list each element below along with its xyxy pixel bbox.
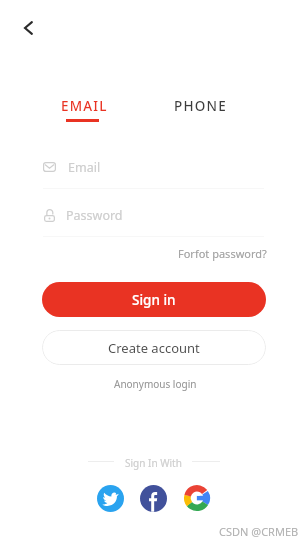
button[interactable]: Sign in with Google xyxy=(184,485,210,511)
button[interactable]: Sign in xyxy=(42,282,266,317)
staticText: EMAIL xyxy=(61,97,108,115)
staticText: Password xyxy=(66,207,123,224)
button[interactable]: Anonymous login xyxy=(109,375,201,393)
staticText: CSDN @CRMEB xyxy=(219,524,299,539)
button[interactable]: Create account xyxy=(42,330,266,365)
button[interactable]: Sign in with Facebook xyxy=(140,485,167,512)
button[interactable]: PHONE xyxy=(162,97,238,121)
staticText: Create account xyxy=(108,339,200,357)
staticText: Email xyxy=(68,159,101,176)
button[interactable]: Back xyxy=(12,11,46,45)
staticText: Anonymous login xyxy=(114,377,197,391)
button[interactable]: Sign in with Twitter xyxy=(97,485,124,512)
button[interactable]: Forfot password? xyxy=(175,244,267,262)
staticText: Sign in xyxy=(132,291,176,309)
staticText: PHONE xyxy=(174,97,227,115)
button[interactable]: EMAIL xyxy=(49,97,119,127)
staticText: Forfot password? xyxy=(178,246,267,261)
staticText: Sign In With xyxy=(125,456,182,470)
button[interactable]: Email xyxy=(43,158,264,176)
button[interactable]: Password xyxy=(44,206,264,224)
